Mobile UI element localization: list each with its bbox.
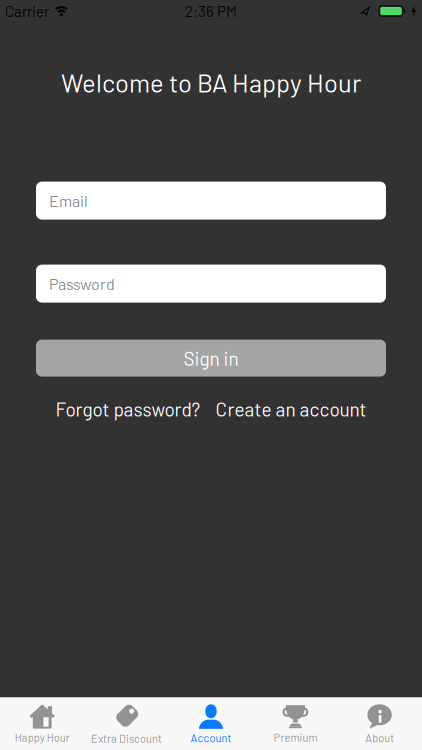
- staticText: Sign in: [183, 347, 238, 369]
- staticText: Happy Hour: [15, 731, 70, 744]
- button[interactable]: Happy Hour: [0, 704, 84, 744]
- staticText: 2:36 PM: [185, 2, 237, 20]
- staticText: Create an account: [215, 398, 366, 420]
- staticText: About: [365, 731, 394, 744]
- staticText: Extra Discount: [91, 732, 162, 745]
- button[interactable]: Password: [36, 265, 386, 303]
- button[interactable]: Forgot password?: [55, 398, 200, 420]
- button[interactable]: Premium: [253, 704, 338, 744]
- button[interactable]: About: [338, 703, 422, 744]
- button[interactable]: Extra Discount: [84, 703, 169, 745]
- button[interactable]: Account: [169, 703, 253, 744]
- staticText: Password: [49, 274, 115, 293]
- button[interactable]: Email: [36, 182, 386, 220]
- staticText: Forgot password?: [55, 398, 200, 420]
- button[interactable]: Sign in: [36, 340, 386, 377]
- staticText: Account: [190, 731, 231, 744]
- staticText: Email: [49, 191, 88, 210]
- button[interactable]: Create an account: [215, 398, 366, 420]
- staticText: Welcome to BA Happy Hour: [61, 67, 361, 98]
- staticText: Carrier: [5, 2, 49, 20]
- staticText: Premium: [273, 731, 317, 744]
